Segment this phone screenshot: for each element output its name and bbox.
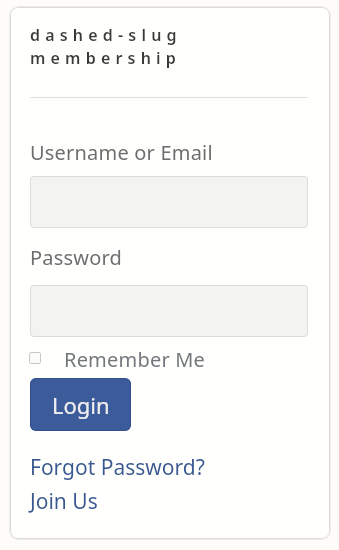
staticText: dashed-slug membership bbox=[30, 24, 182, 69]
button[interactable]: Login bbox=[30, 378, 131, 431]
staticText: Password bbox=[30, 244, 123, 271]
button[interactable]: Forgot Password? bbox=[30, 453, 205, 482]
staticText: Remember Me bbox=[64, 346, 206, 373]
staticText: Login bbox=[52, 390, 110, 420]
button[interactable] bbox=[29, 352, 41, 364]
button[interactable] bbox=[30, 176, 308, 228]
button[interactable]: Join Us bbox=[30, 487, 98, 516]
button[interactable] bbox=[30, 285, 308, 337]
staticText: Username or Email bbox=[30, 139, 213, 166]
